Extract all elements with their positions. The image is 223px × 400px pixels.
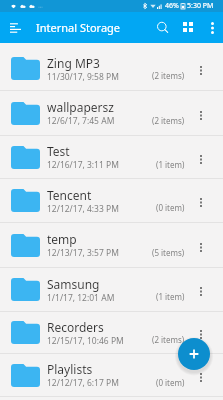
staticText: (1 item) [156, 291, 185, 302]
button[interactable]: Item options [191, 47, 223, 90]
staticText: (0 item) [156, 377, 185, 388]
button[interactable]: Tencent [0, 179, 223, 222]
staticText: (2 items) [152, 334, 185, 345]
button[interactable]: Search [147, 12, 173, 43]
staticText: Test [47, 143, 70, 159]
staticText: (5 items) [152, 247, 185, 258]
button[interactable]: Samsung [0, 268, 223, 311]
staticText: (1 item) [156, 159, 185, 170]
button[interactable]: temp [0, 223, 223, 267]
button[interactable]: Grid view [173, 12, 199, 43]
button[interactable]: Item options [191, 223, 223, 267]
staticText: Internal Storage [36, 20, 121, 35]
button[interactable]: Menu [0, 12, 30, 43]
button[interactable]: Zing MP3 [0, 47, 223, 90]
staticText: Tencent [47, 187, 92, 203]
button[interactable]: wallpapersz [0, 91, 223, 135]
button[interactable]: Item options [191, 268, 223, 311]
staticText: (2 items) [152, 70, 185, 81]
staticText: 12/12/17, 6:17 PM [47, 377, 119, 389]
button[interactable]: Item options [191, 354, 223, 396]
button[interactable]: Item options [191, 179, 223, 222]
button[interactable]: More options [199, 12, 223, 43]
staticText: Playlists [47, 361, 93, 377]
staticText: 12/16/17, 3:11 PM [47, 159, 119, 171]
staticText: temp [47, 231, 77, 247]
staticText: 1/1/17, 12:01 AM [47, 292, 115, 304]
staticText: (0 item) [156, 202, 185, 213]
button[interactable]: Item options [191, 91, 223, 135]
staticText: 11/30/17, 9:58 PM [47, 71, 119, 83]
staticText: wallpapersz [47, 99, 114, 115]
staticText: 5:30 PM [187, 1, 214, 11]
staticText: Zing MP3 [47, 55, 100, 71]
staticText: Recorders [47, 319, 104, 335]
staticText: (2 items) [152, 115, 185, 126]
staticText: 46% [165, 1, 179, 11]
staticText: 12/13/17, 3:57 PM [47, 247, 119, 259]
button[interactable]: Recorders [0, 312, 223, 353]
button[interactable]: Item options [191, 136, 223, 178]
button[interactable]: Add [178, 338, 210, 370]
staticText: Samsung [47, 276, 100, 292]
staticText: 12/6/17, 7:45 AM [47, 115, 115, 127]
staticText: 12/15/17, 10:46 PM [47, 335, 124, 347]
button[interactable]: Item options [191, 312, 223, 353]
button[interactable]: Test [0, 136, 223, 178]
staticText: 12/12/17, 4:33 PM [47, 203, 119, 215]
button[interactable]: Playlists [0, 354, 223, 396]
